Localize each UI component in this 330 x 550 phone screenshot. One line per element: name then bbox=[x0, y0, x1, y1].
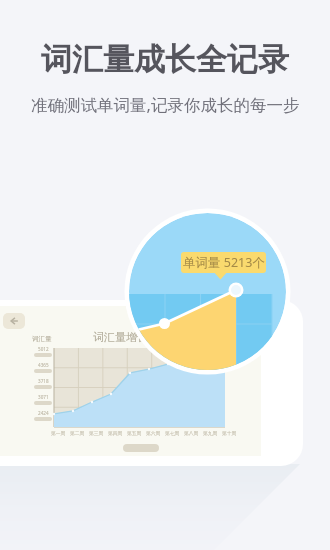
button[interactable] bbox=[123, 444, 159, 452]
staticText: 第二周 bbox=[70, 430, 85, 436]
staticText: 第八周 bbox=[184, 430, 199, 436]
staticText: 3071 bbox=[38, 394, 49, 400]
staticText: 准确测试单词量,记录你成长的每一步 bbox=[31, 93, 300, 116]
button[interactable]: Back bbox=[0, 306, 261, 456]
staticText: 第四周 bbox=[108, 430, 123, 436]
staticText: 词汇量增长 bbox=[93, 330, 148, 344]
staticText: 词汇量 bbox=[32, 335, 52, 343]
button[interactable]: 单词量 5213个 bbox=[181, 252, 266, 273]
staticText: 第九周 bbox=[203, 430, 218, 436]
staticText: 单词量 5213个 bbox=[183, 254, 265, 271]
staticText: 2424 bbox=[38, 410, 49, 416]
staticText: 4365 bbox=[38, 362, 49, 368]
staticText: 第七周 bbox=[165, 430, 180, 436]
button[interactable]: Back bbox=[3, 313, 25, 329]
staticText: 第六周 bbox=[146, 430, 161, 436]
staticText: 第十周 bbox=[222, 430, 237, 436]
staticText: 第三周 bbox=[89, 430, 104, 436]
staticText: 5012 bbox=[38, 346, 49, 352]
staticText: 第五周 bbox=[127, 430, 142, 436]
staticText: 第一周 bbox=[51, 430, 66, 436]
staticText: 3718 bbox=[38, 378, 49, 384]
staticText: 词汇量成长全记录 bbox=[41, 40, 289, 79]
